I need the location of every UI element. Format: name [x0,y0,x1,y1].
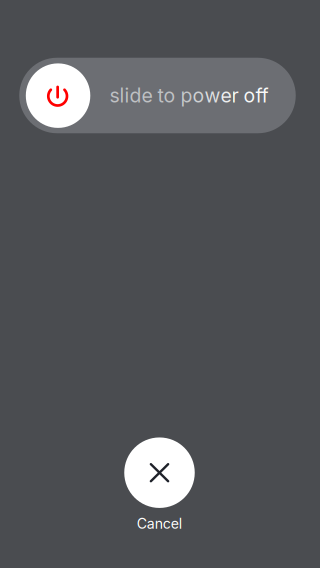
staticText: r off [232,84,269,107]
staticText: o [193,84,205,107]
staticText: Cancel [137,515,182,532]
button[interactable]: Slide to power off [19,58,296,133]
staticText: slide to [110,84,181,107]
staticText: w [205,84,221,107]
button[interactable]: Cancel [104,436,214,537]
staticText: e [221,84,232,107]
staticText: p [181,84,193,107]
